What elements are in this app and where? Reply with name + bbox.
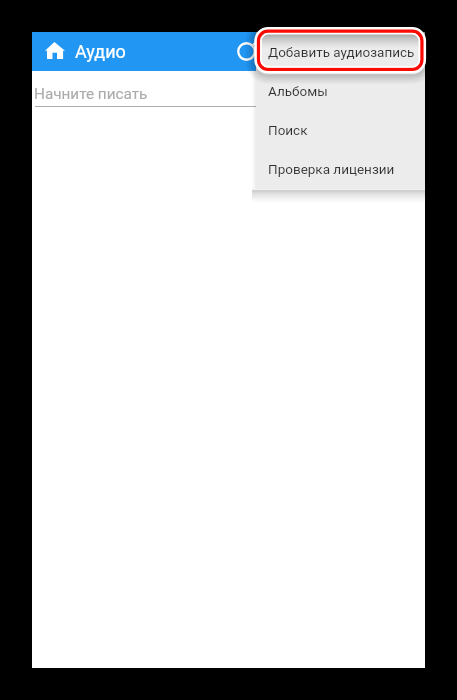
staticText: Начните писать [34, 85, 148, 103]
button[interactable]: Добавить аудиозапись [256, 32, 425, 71]
staticText: Добавить аудиозапись [268, 44, 415, 60]
button[interactable]: Альбомы [256, 71, 425, 110]
button[interactable]: Home [45, 42, 65, 59]
staticText: Альбомы [268, 83, 328, 99]
staticText: Проверка лицензии [268, 161, 395, 177]
button[interactable]: Search [234, 39, 259, 64]
staticText: Поиск [268, 122, 308, 138]
button[interactable]: Проверка лицензии [256, 149, 425, 188]
button[interactable]: Поиск [256, 110, 425, 149]
staticText: Аудио [75, 41, 126, 62]
